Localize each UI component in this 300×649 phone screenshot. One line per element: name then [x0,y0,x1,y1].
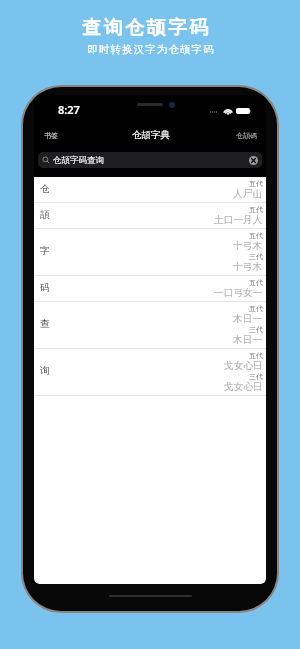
staticText: 三代 [249,372,263,381]
staticText: 木日一 [233,334,263,346]
staticText: 五代 [249,304,263,313]
button[interactable]: 字 [34,229,266,276]
staticText: 五代 [249,351,263,360]
staticText: 戈女心日 [224,381,263,393]
staticText: 五代 [249,231,263,240]
button[interactable]: Clear search [249,156,258,165]
button[interactable]: 頡 [34,203,266,229]
staticText: 查 [40,318,50,330]
staticText: 一口弓女一 [214,287,263,299]
staticText: 五代 [249,205,263,214]
staticText: 书签 [44,131,58,140]
staticText: 人尸山 [233,188,263,200]
staticText: 仓頡碼 [236,131,257,140]
button[interactable]: 仓頡碼 [233,128,260,143]
staticText: 三代 [249,325,263,334]
staticText: 询 [40,365,50,377]
staticText: 字 [40,245,50,257]
staticText: 五代 [249,179,263,188]
staticText: 仓 [40,183,50,195]
staticText: 三代 [249,252,263,261]
button[interactable]: 仓頡字码查询 [38,152,262,168]
staticText: 仓頡字码查询 [53,155,104,166]
button[interactable]: 码 [34,276,266,302]
staticText: 仓頡字典 [132,129,170,141]
staticText: 十弓木 [233,261,263,273]
button[interactable]: 查 [34,302,266,349]
staticText: 土口一月人 [214,214,263,226]
button[interactable]: 询 [34,349,266,396]
staticText: 查询仓颉字码 [82,16,211,40]
staticText: 木日一 [233,313,263,325]
button[interactable]: 书签 [39,128,63,143]
staticText: 码 [40,282,50,294]
staticText: 五代 [249,278,263,287]
staticText: 十弓木 [233,240,263,252]
button[interactable]: 仓 [34,177,266,203]
staticText: 8:27 [58,102,80,117]
staticText: 頡 [40,209,50,221]
staticText: 即时转换汉字为仓颉字码 [87,43,215,56]
staticText: 戈女心日 [224,360,263,372]
